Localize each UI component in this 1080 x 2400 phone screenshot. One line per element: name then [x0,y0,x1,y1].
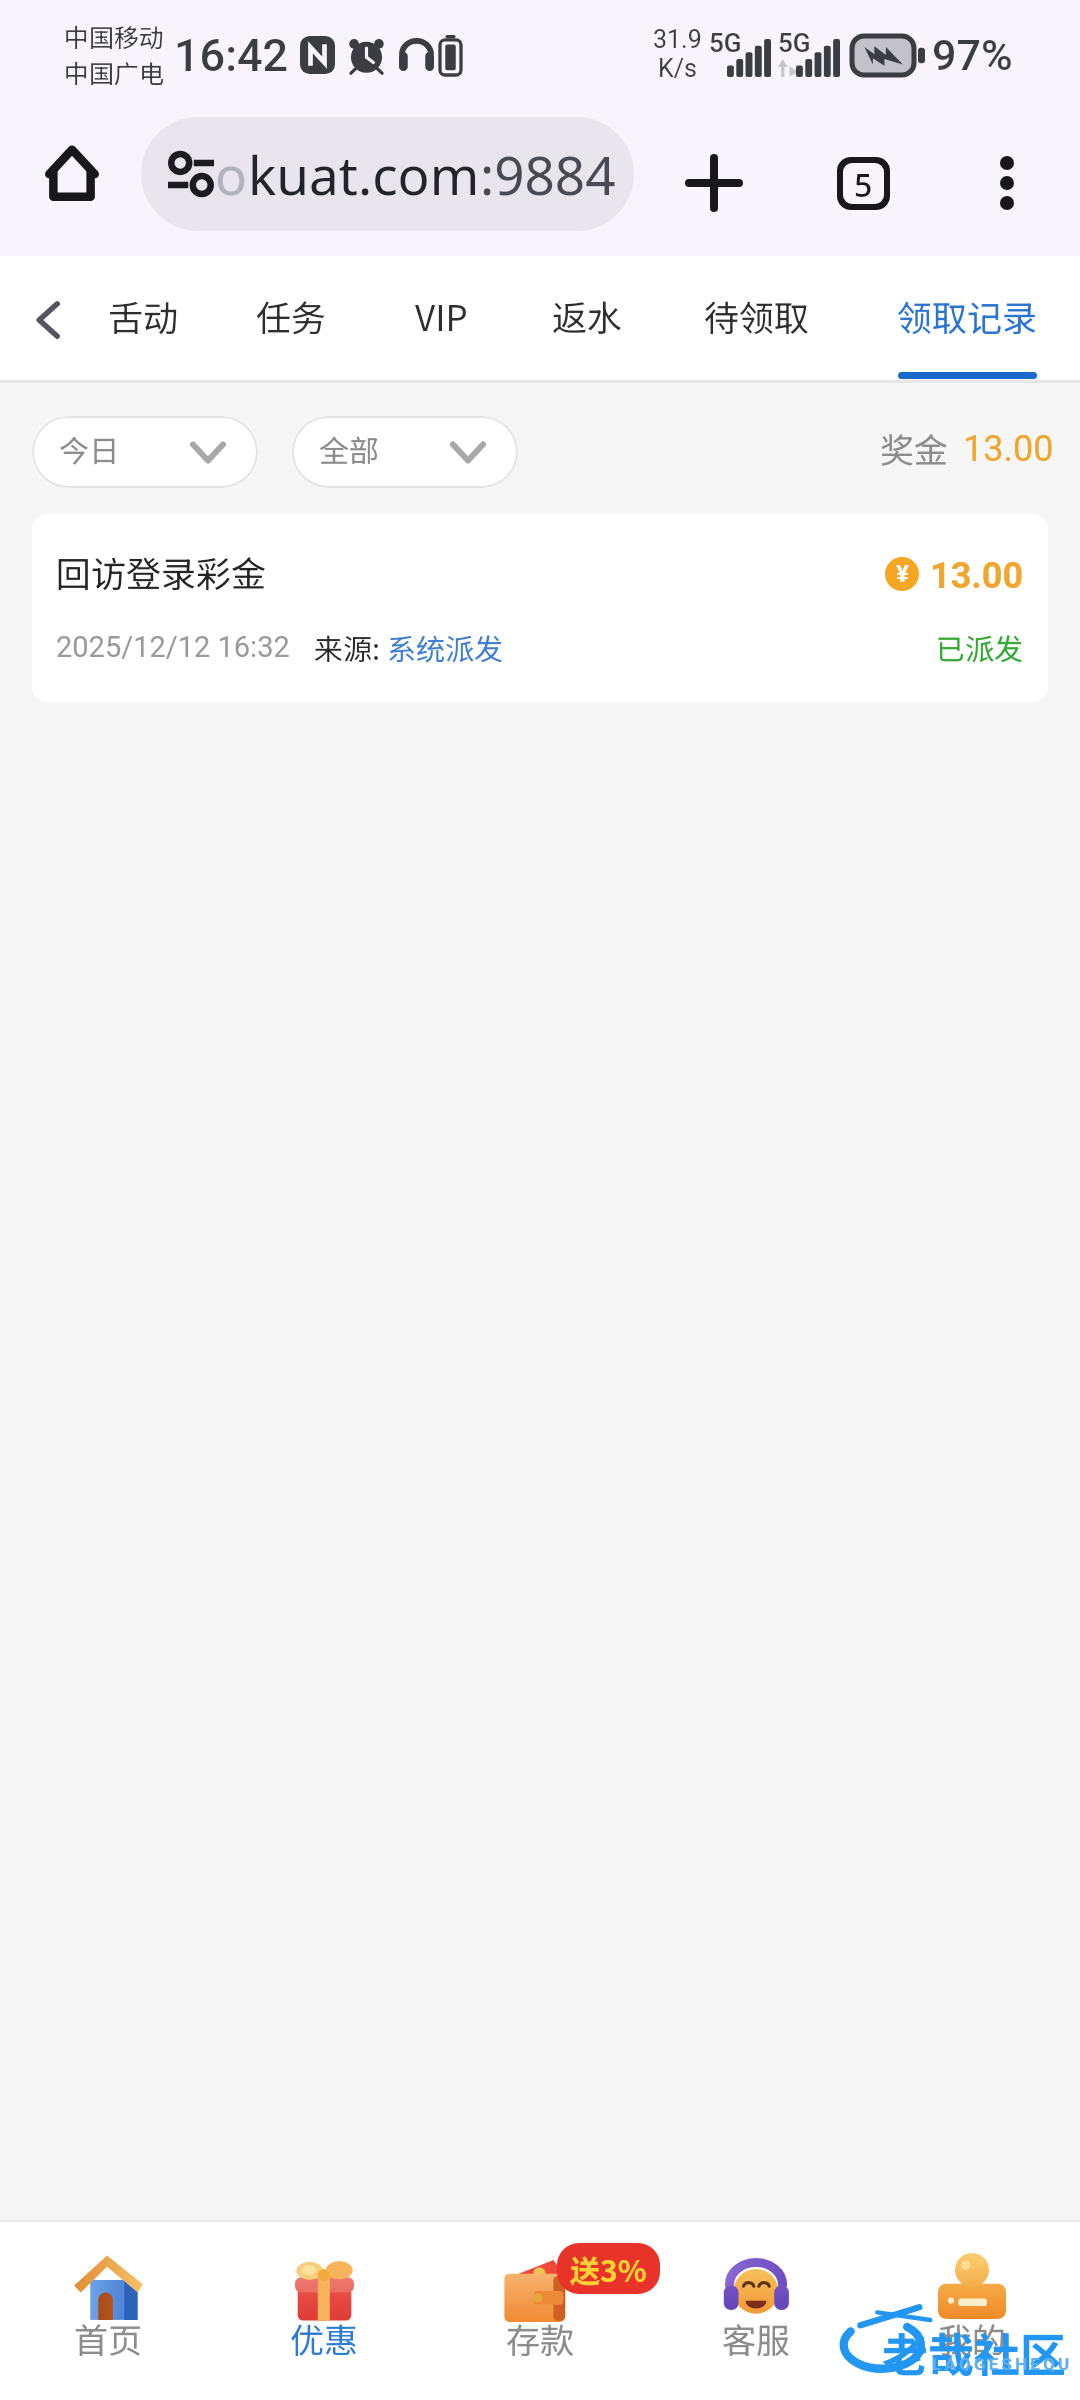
button[interactable]: 客服 [648,2222,864,2400]
button[interactable]: Back [12,256,84,383]
staticText: 客服 [722,2314,790,2363]
staticText: 中国移动 [64,18,165,54]
staticText: 97% [932,30,1013,80]
staticText: 我的 [938,2314,1006,2363]
staticText: :9884 [480,138,616,210]
button[interactable]: 今日 [32,416,258,488]
button[interactable]: 我的 [864,2222,1080,2400]
staticText: 2025/12/12 16:32 [56,630,290,664]
button[interactable]: 返水 [513,256,661,383]
staticText: 任务 [256,290,327,341]
staticText: 返水 [552,290,623,341]
staticText: LAOGESHEQU [932,2354,1073,2374]
staticText: 全部 [319,427,379,470]
staticText: 5G [709,28,742,58]
button[interactable]: 全部 [292,416,518,488]
staticText: 存款 [506,2314,574,2363]
button[interactable]: 领取记录 [893,256,1041,383]
staticText: 首页 [74,2314,142,2363]
staticText: 优惠 [290,2314,358,2363]
staticText: 5 [854,163,873,204]
staticText: 中国广电 [64,54,165,90]
staticText: VIP [415,290,468,341]
button[interactable]: o [141,117,634,231]
staticText: kuat.com [248,138,480,210]
button[interactable]: Tabs [820,110,906,256]
staticText: 老哉社区 [882,2319,1066,2386]
button[interactable]: VIP [367,256,515,383]
staticText: 送3% [570,2247,647,2290]
button[interactable]: 舌动 [69,256,217,383]
staticText: 待领取 [704,290,810,341]
staticText: 13.00 [930,555,1024,597]
button[interactable]: New tab [671,110,757,256]
button[interactable]: 优惠 [216,2222,432,2400]
button[interactable]: 任务 [217,256,365,383]
staticText: 舌动 [108,290,179,341]
button[interactable]: 首页 [0,2222,216,2400]
button[interactable]: 待领取 [683,256,831,383]
staticText: ¥ [896,560,909,588]
button[interactable]: More options [964,110,1050,256]
staticText: 奖金 [880,424,948,473]
staticText: 已派发 [936,626,1024,668]
staticText: o [215,138,248,210]
staticText: 16:42 [174,29,289,82]
staticText: 13.00 [963,428,1054,470]
staticText: 回访登录彩金 [56,546,267,597]
staticText: 5G [778,28,811,58]
staticText: 31.9 [653,25,702,54]
staticText: 领取记录 [897,290,1038,341]
button[interactable]: 回访登录彩金 [32,514,1048,702]
staticText: 来源: [314,626,387,668]
staticText: 今日 [59,427,119,470]
staticText: 系统派发 [387,626,504,668]
button[interactable]: 送3% [432,2222,648,2400]
staticText: K/s [658,54,697,83]
button[interactable]: Home [30,110,114,256]
